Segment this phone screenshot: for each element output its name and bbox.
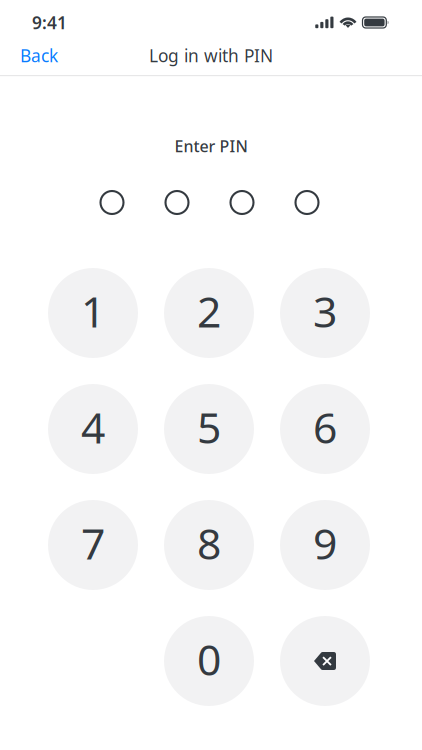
staticText: 4 — [81, 399, 105, 455]
button[interactable]: 8 — [164, 500, 254, 590]
staticText: 2 — [197, 283, 221, 339]
staticText: 5 — [197, 399, 221, 455]
button[interactable]: 9 — [280, 500, 370, 590]
staticText: 9 — [313, 515, 337, 571]
staticText: 1 — [81, 283, 105, 339]
button[interactable]: 7 — [48, 500, 138, 590]
staticText: Enter PIN — [174, 135, 247, 157]
staticText: 7 — [81, 515, 105, 571]
button[interactable]: Back — [0, 39, 72, 72]
staticText: 0 — [197, 631, 221, 687]
staticText: 9:41 — [32, 11, 67, 34]
button[interactable]: 5 — [164, 384, 254, 474]
staticText: Back — [20, 44, 58, 67]
staticText: 3 — [313, 283, 337, 339]
button[interactable]: 3 — [280, 268, 370, 358]
staticText: 6 — [313, 399, 337, 455]
button[interactable]: 0 — [164, 616, 254, 706]
staticText: 8 — [197, 515, 221, 571]
button[interactable]: Delete — [280, 616, 370, 706]
button[interactable]: 2 — [164, 268, 254, 358]
button[interactable]: 6 — [280, 384, 370, 474]
button[interactable]: 4 — [48, 384, 138, 474]
staticText: Log in with PIN — [149, 44, 273, 67]
button[interactable]: 1 — [48, 268, 138, 358]
